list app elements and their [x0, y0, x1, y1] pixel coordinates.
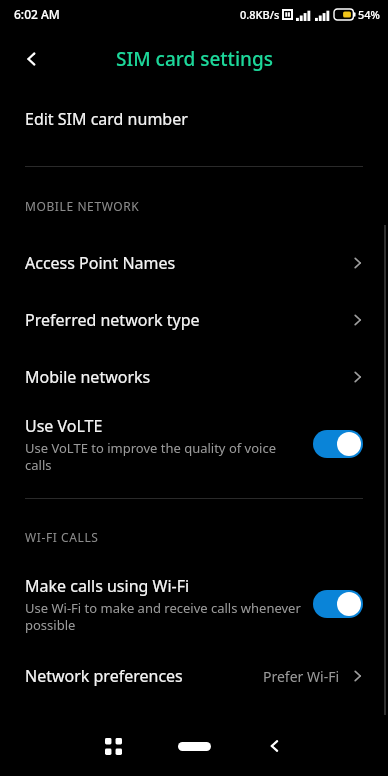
- button[interactable]: Back: [255, 726, 295, 766]
- button[interactable]: Recent apps: [93, 726, 133, 766]
- button[interactable]: Edit SIM card number: [0, 90, 388, 148]
- staticText: SIM card settings: [116, 46, 273, 72]
- staticText: 0.8KB/s: [240, 7, 280, 22]
- button[interactable]: Back: [10, 37, 54, 81]
- staticText: MOBILE NETWORK: [25, 198, 140, 214]
- button[interactable]: Use VoLTE: [0, 405, 388, 483]
- button[interactable]: Network preferences: [0, 649, 388, 703]
- staticText: WI-FI CALLS: [25, 529, 99, 545]
- staticText: Use VoLTE to improve the quality of voic…: [25, 439, 301, 474]
- staticText: Use Wi-Fi to make and receive calls when…: [25, 599, 301, 634]
- staticText: Prefer Wi-Fi: [263, 667, 340, 686]
- staticText: 6:02 AM: [14, 6, 60, 22]
- staticText: 54%: [358, 7, 380, 22]
- staticText: Use VoLTE: [25, 415, 103, 437]
- staticText: Network preferences: [25, 665, 263, 687]
- staticText: Make calls using Wi-Fi: [25, 575, 190, 597]
- button[interactable]: Mobile networks: [0, 348, 388, 405]
- staticText: Mobile networks: [25, 366, 348, 388]
- button[interactable]: Make calls using Wi-Fi: [0, 565, 388, 643]
- staticText: Edit SIM card number: [25, 108, 188, 130]
- button[interactable]: Access Point Names: [0, 234, 388, 291]
- staticText: Access Point Names: [25, 252, 348, 274]
- staticText: Preferred network type: [25, 309, 348, 331]
- button[interactable]: Preferred network type: [0, 291, 388, 348]
- button[interactable]: Home: [164, 729, 224, 763]
